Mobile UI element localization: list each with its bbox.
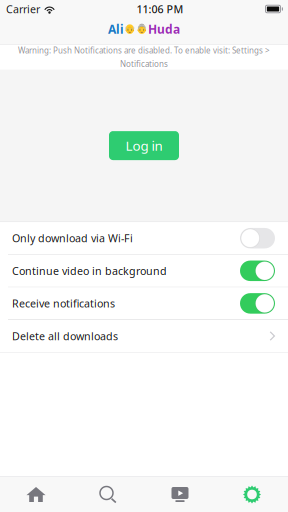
staticText: 11:06 PM xyxy=(136,2,183,16)
staticText: Carrier xyxy=(6,2,40,16)
button[interactable]: Home xyxy=(0,477,72,512)
button[interactable]: Settings xyxy=(216,477,288,512)
button[interactable]: Delete all downloads xyxy=(0,320,288,352)
staticText: Only download via Wi-Fi xyxy=(12,231,133,245)
staticText: Delete all downloads xyxy=(12,329,118,343)
button[interactable]: Search xyxy=(72,477,144,512)
staticText: Ali xyxy=(108,21,124,37)
staticText: 👴👵 xyxy=(124,24,148,34)
button[interactable]: Log in xyxy=(109,131,179,160)
button[interactable]: Videos xyxy=(144,477,216,512)
button[interactable]: Continue video in background xyxy=(0,255,288,287)
staticText: Continue video in background xyxy=(12,264,167,278)
button[interactable]: Only download via Wi-Fi xyxy=(0,222,288,254)
button[interactable]: Receive notifications xyxy=(0,287,288,319)
staticText: Warning: Push Notifications are disabled… xyxy=(18,45,270,56)
staticText: Receive notifications xyxy=(12,296,115,310)
staticText: Notifications xyxy=(120,59,168,69)
staticText: Log in xyxy=(125,137,162,154)
staticText: Huda xyxy=(148,21,180,37)
